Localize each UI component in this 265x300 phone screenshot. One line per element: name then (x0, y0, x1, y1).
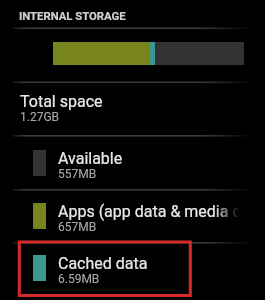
staticText: INTERNAL STORAGE (19, 10, 126, 23)
staticText: Total space (20, 92, 103, 111)
button[interactable]: Total space (0, 81, 265, 133)
button[interactable]: Available (0, 150, 265, 202)
staticText: 1.27GB (20, 110, 60, 124)
other: Storage usage (53, 42, 244, 65)
staticText: Cached data (58, 254, 148, 273)
staticText: 657MB (58, 220, 97, 234)
staticText: 557MB (58, 167, 97, 181)
staticText: Apps (app data & media content) (58, 202, 265, 221)
staticText: Available (58, 149, 123, 168)
button[interactable]: Apps (app data & media content) (0, 203, 265, 255)
button[interactable]: Cached data (0, 255, 265, 300)
staticText: 6.59MB (58, 272, 100, 286)
